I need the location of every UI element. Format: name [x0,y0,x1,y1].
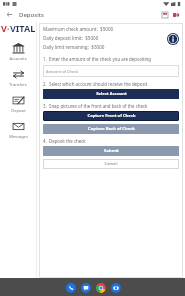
staticText: Transfers [9,82,27,87]
button[interactable]: Select Account [43,89,179,99]
button[interactable]: Chrome [95,282,106,293]
button[interactable]: Phone [65,282,76,293]
staticText: Maximum check amount: $5000 [43,26,114,32]
staticText: Capture Front of Check [87,113,136,119]
button[interactable]: Cancel [43,159,179,169]
button[interactable]: Transfers [0,64,36,90]
staticText: Daily deposit limit: $5000 [43,35,99,41]
button[interactable]: Amount of Check [43,65,179,77]
staticText: Accounts [9,56,27,61]
button[interactable]: Accounts [0,38,36,64]
staticText: · [7,23,10,34]
staticText: Cancel [104,161,118,167]
staticText: Deposits [19,11,44,19]
staticText: V [1,22,7,34]
button[interactable]: Capture Back of Check [43,124,179,134]
button[interactable]: Camera [110,282,121,293]
staticText: Amount of Check [46,69,79,74]
staticText: 1. Enter the amount of the check you are… [43,56,152,62]
button[interactable]: Submit [43,146,179,156]
button[interactable]: Calculator [159,9,170,20]
button[interactable]: Information [166,32,179,45]
staticText: Capture Back of Check [88,126,135,132]
button[interactable]: Capture Front of Check [44,112,178,120]
staticText: 2. Select which account should receive t… [43,81,148,87]
staticText: VITAL [10,22,36,34]
button[interactable]: Deposit [0,90,36,116]
staticText: Select Account [96,91,127,97]
staticText: Daily limit remaining: $5000 [43,44,105,50]
staticText: 3. Snap pictures of the front and back o… [43,103,148,109]
button[interactable]: Messages [80,282,91,293]
staticText: Deposit [11,108,26,113]
button[interactable]: Back [4,9,15,20]
staticText: Messages [9,134,28,139]
staticText: 4. Deposit the check [43,138,86,144]
button[interactable]: Sign out [170,9,181,20]
staticText: Submit [104,148,119,154]
button[interactable]: Messages [0,116,36,142]
